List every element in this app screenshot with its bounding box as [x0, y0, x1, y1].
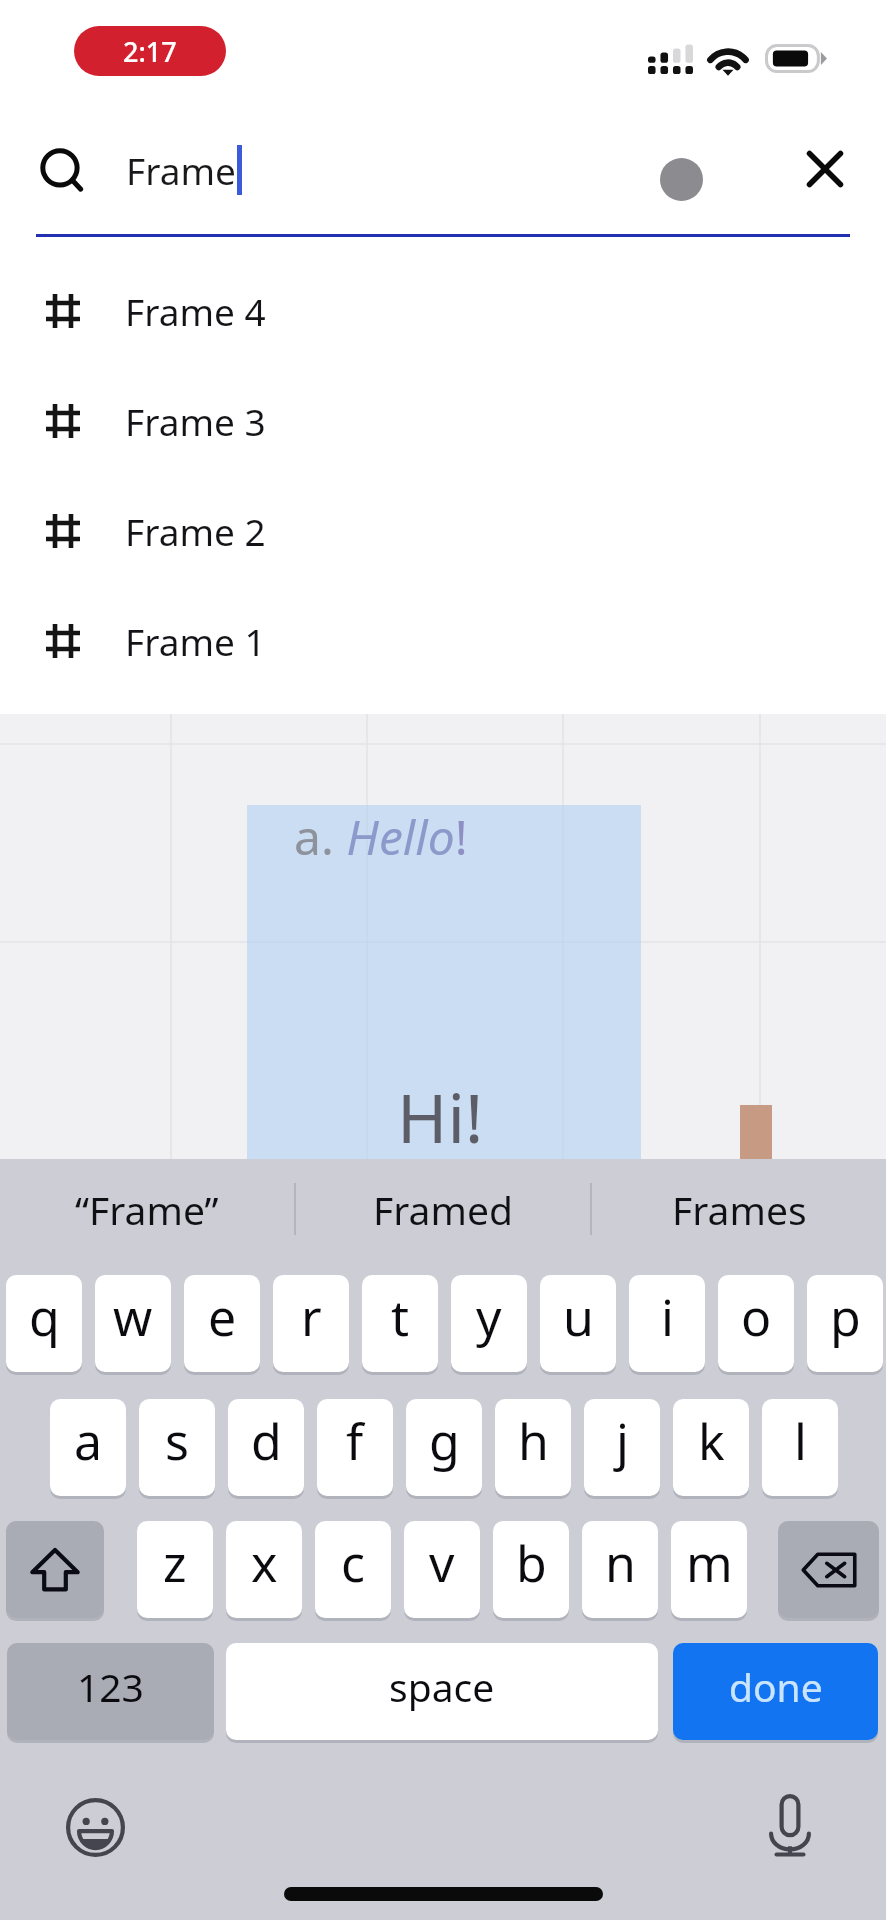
staticText: o: [741, 1283, 772, 1351]
button[interactable]: “Frame”: [0, 1159, 294, 1259]
staticText: a. Hello!: [294, 804, 468, 869]
button[interactable]: n: [582, 1521, 658, 1618]
staticText: y: [476, 1283, 502, 1351]
button[interactable]: o: [718, 1275, 794, 1372]
staticText: z: [163, 1529, 187, 1597]
staticText: Frame 2: [125, 506, 266, 556]
button[interactable]: Close search: [800, 144, 850, 194]
button[interactable]: a: [50, 1399, 126, 1496]
button[interactable]: Shift: [6, 1521, 104, 1618]
button[interactable]: p: [807, 1275, 883, 1372]
staticText: d: [251, 1407, 282, 1475]
button[interactable]: c: [315, 1521, 391, 1618]
button[interactable]: Recording timer 2:17: [74, 26, 226, 76]
staticText: t: [391, 1283, 410, 1351]
staticText: done: [729, 1660, 823, 1713]
staticText: b: [516, 1529, 547, 1597]
button[interactable]: w: [95, 1275, 171, 1372]
staticText: 123: [77, 1660, 144, 1713]
button[interactable]: e: [184, 1275, 260, 1372]
button[interactable]: Search: [35, 146, 87, 198]
staticText: j: [616, 1407, 629, 1475]
button[interactable]: s: [139, 1399, 215, 1496]
button[interactable]: u: [540, 1275, 616, 1372]
staticText: e: [208, 1283, 237, 1351]
staticText: Frames: [672, 1183, 807, 1236]
button[interactable]: g: [406, 1399, 482, 1496]
button[interactable]: i: [629, 1275, 705, 1372]
button[interactable]: m: [671, 1521, 747, 1618]
staticText: p: [830, 1283, 861, 1351]
staticText: n: [605, 1529, 636, 1597]
button[interactable]: Frame 4: [0, 256, 886, 366]
staticText: r: [301, 1283, 322, 1351]
button[interactable]: y: [451, 1275, 527, 1372]
staticText: i: [661, 1283, 674, 1351]
button[interactable]: done: [673, 1643, 878, 1740]
staticText: w: [113, 1283, 153, 1351]
staticText: g: [429, 1407, 460, 1475]
button[interactable]: 123: [7, 1643, 214, 1740]
staticText: Frame 3: [125, 396, 266, 446]
button[interactable]: l: [762, 1399, 838, 1496]
button[interactable]: Frames: [592, 1159, 886, 1259]
button[interactable]: h: [495, 1399, 571, 1496]
staticText: Framed: [373, 1183, 513, 1236]
staticText: v: [429, 1529, 455, 1597]
button[interactable]: j: [584, 1399, 660, 1496]
staticText: Hi!: [397, 1070, 484, 1163]
staticText: l: [794, 1407, 807, 1475]
staticText: m: [686, 1529, 733, 1597]
staticText: “Frame”: [75, 1183, 219, 1236]
button[interactable]: Frame 3: [0, 366, 886, 476]
button[interactable]: f: [317, 1399, 393, 1496]
staticText: Frame 1: [125, 616, 266, 666]
button[interactable]: d: [228, 1399, 304, 1496]
staticText: u: [563, 1283, 594, 1351]
staticText: x: [251, 1529, 278, 1597]
staticText: Frame 4: [125, 286, 266, 336]
staticText: q: [29, 1283, 60, 1351]
button[interactable]: r: [273, 1275, 349, 1372]
button[interactable]: t: [362, 1275, 438, 1372]
button[interactable]: Account: [660, 158, 703, 201]
button[interactable]: v: [404, 1521, 480, 1618]
button[interactable]: Framed: [296, 1159, 590, 1259]
staticText: a: [74, 1407, 103, 1475]
button[interactable]: q: [6, 1275, 82, 1372]
staticText: 2:17: [123, 33, 177, 70]
button[interactable]: Backspace: [778, 1521, 879, 1618]
staticText: f: [346, 1407, 364, 1475]
button[interactable]: Frame 2: [0, 476, 886, 586]
button[interactable]: Frame 1: [0, 586, 886, 696]
button[interactable]: Emoji keyboard: [66, 1798, 125, 1857]
button[interactable]: space: [226, 1643, 658, 1740]
button[interactable]: z: [137, 1521, 213, 1618]
staticText: space: [389, 1660, 495, 1713]
button[interactable]: Dictation: [769, 1794, 811, 1857]
staticText: s: [165, 1407, 189, 1475]
staticText: Frame: [126, 145, 236, 195]
button[interactable]: x: [226, 1521, 302, 1618]
staticText: c: [341, 1529, 365, 1597]
staticText: h: [518, 1407, 549, 1475]
button[interactable]: k: [673, 1399, 749, 1496]
button[interactable]: b: [493, 1521, 569, 1618]
staticText: k: [698, 1407, 725, 1475]
